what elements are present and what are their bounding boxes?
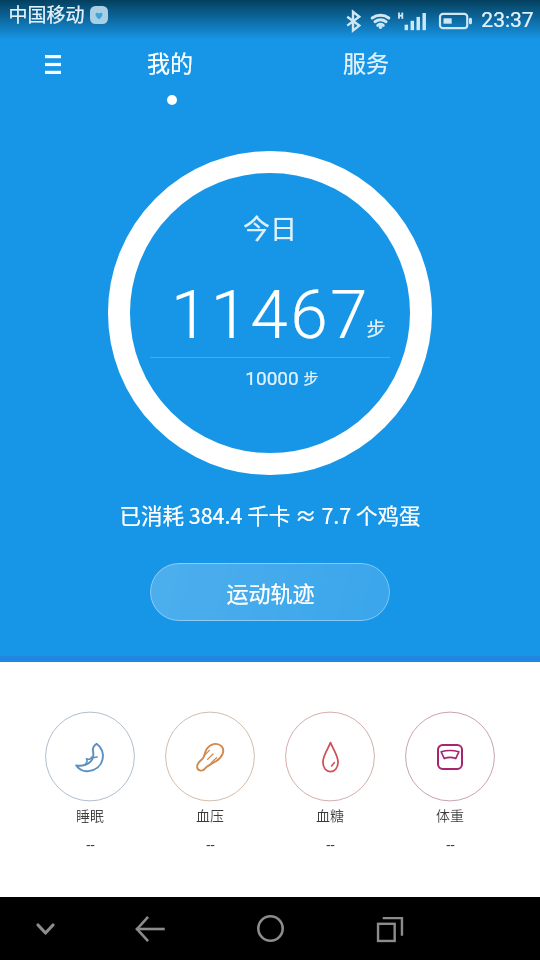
staticText: 运动轨迹 (226, 576, 315, 608)
staticText: -- (86, 836, 95, 854)
button[interactable]: Menu (30, 42, 76, 86)
button[interactable]: Back (120, 897, 180, 960)
button[interactable]: 体重 (405, 711, 495, 854)
staticText: -- (326, 836, 335, 854)
staticText: 中国移动 (8, 0, 85, 28)
button[interactable]: 服务 (322, 42, 410, 80)
button[interactable]: 运动轨迹 (150, 563, 390, 621)
staticText: -- (446, 836, 455, 854)
staticText: 我的 (147, 45, 193, 78)
button[interactable]: Recents (360, 897, 420, 960)
staticText: 步 (366, 314, 386, 342)
staticText: 23:37 (481, 8, 534, 33)
staticText: 服务 (343, 45, 389, 78)
staticText: 血压 (196, 805, 224, 825)
button[interactable]: Home (240, 897, 300, 960)
button[interactable]: 我的 (126, 42, 214, 80)
staticText: 今日 (243, 208, 297, 247)
staticText: 11467 (171, 276, 370, 355)
button[interactable]: Hide (20, 897, 70, 960)
staticText: 步 (303, 367, 319, 389)
staticText: 血糖 (316, 805, 344, 825)
staticText: -- (206, 836, 215, 854)
button[interactable]: 血糖 (285, 711, 375, 854)
staticText: 已消耗 384.4 千卡 ≈ 7.7 个鸡蛋 (119, 499, 421, 530)
button[interactable]: 血压 (165, 711, 255, 854)
staticText: 睡眠 (76, 805, 104, 825)
staticText: 体重 (436, 805, 464, 825)
staticText: 10000 (245, 367, 299, 389)
button[interactable]: 睡眠 (45, 711, 135, 854)
